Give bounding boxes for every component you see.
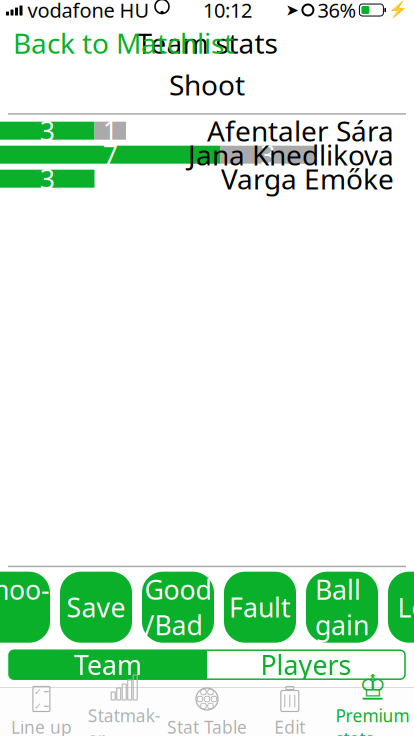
button[interactable]: Good/Bad	[142, 572, 214, 643]
staticText: Team stats	[136, 24, 277, 62]
staticText: Varga Emőke	[221, 160, 394, 197]
staticText: Team	[74, 647, 142, 682]
staticText: 1	[103, 113, 118, 148]
staticText: Fault	[229, 589, 291, 625]
staticText: ✓	[34, 701, 42, 712]
staticText: ♔	[359, 668, 386, 703]
staticText: Back to Matchlist	[13, 24, 234, 62]
staticText: Good/Bad	[144, 572, 211, 643]
button[interactable]: Save	[60, 572, 132, 643]
staticText: Ball gain	[315, 572, 369, 643]
button[interactable]: Back to Matchlist	[0, 16, 247, 70]
staticText: Save	[66, 589, 125, 625]
button[interactable]: Players	[207, 650, 405, 679]
button[interactable]: ♔	[331, 688, 414, 736]
staticText: 3	[40, 113, 55, 148]
staticText: Lost	[397, 589, 414, 625]
staticText: Afentaler Sára	[207, 112, 394, 149]
button[interactable]: Shoot	[0, 572, 50, 643]
staticText: Jana Knedlikova	[188, 136, 394, 173]
staticText: Edit	[274, 715, 305, 736]
staticText: Stat Table	[167, 715, 247, 736]
button[interactable]: Stat Table	[166, 688, 248, 736]
staticText: 7	[103, 137, 118, 172]
staticText: Shoot	[169, 66, 245, 103]
staticText: ➤	[285, 1, 298, 19]
staticText: Premium stats	[336, 704, 410, 736]
staticText: Line up	[11, 715, 72, 736]
staticText: 10:12	[203, 0, 252, 23]
button[interactable]: Lost	[388, 572, 414, 643]
staticText: ⚡	[388, 1, 408, 19]
button[interactable]: Team	[9, 650, 207, 679]
staticText: 3	[40, 161, 55, 196]
button[interactable]: Ball gain	[306, 572, 378, 643]
button[interactable]: Statmaker	[83, 688, 166, 736]
staticText: Statmaker	[88, 704, 161, 736]
staticText: Shoot	[0, 572, 50, 643]
staticText: 3	[260, 137, 275, 172]
button[interactable]: Fault	[224, 572, 296, 643]
button[interactable]: Edit	[248, 688, 331, 736]
staticText: vodafone HU	[27, 0, 149, 23]
button[interactable]: ✓	[0, 688, 83, 736]
staticText: 36%	[317, 0, 356, 23]
staticText: Players	[260, 647, 351, 682]
staticText: ✓	[34, 686, 42, 697]
